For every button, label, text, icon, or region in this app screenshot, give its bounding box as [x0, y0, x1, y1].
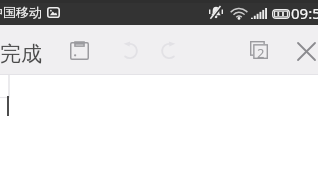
- button[interactable]: Undo: [112, 33, 144, 65]
- staticText: 09:55: [291, 3, 318, 23]
- staticText: 中国移动: [0, 4, 42, 20]
- staticText: 2: [257, 44, 265, 59]
- button[interactable]: Close: [290, 35, 318, 67]
- button[interactable]: Tabs: [243, 34, 275, 66]
- button[interactable]: Redo: [154, 33, 186, 65]
- button[interactable]: Save: [63, 35, 95, 67]
- staticText: 完成: [0, 41, 42, 67]
- button[interactable]: 完成: [0, 25, 52, 75]
